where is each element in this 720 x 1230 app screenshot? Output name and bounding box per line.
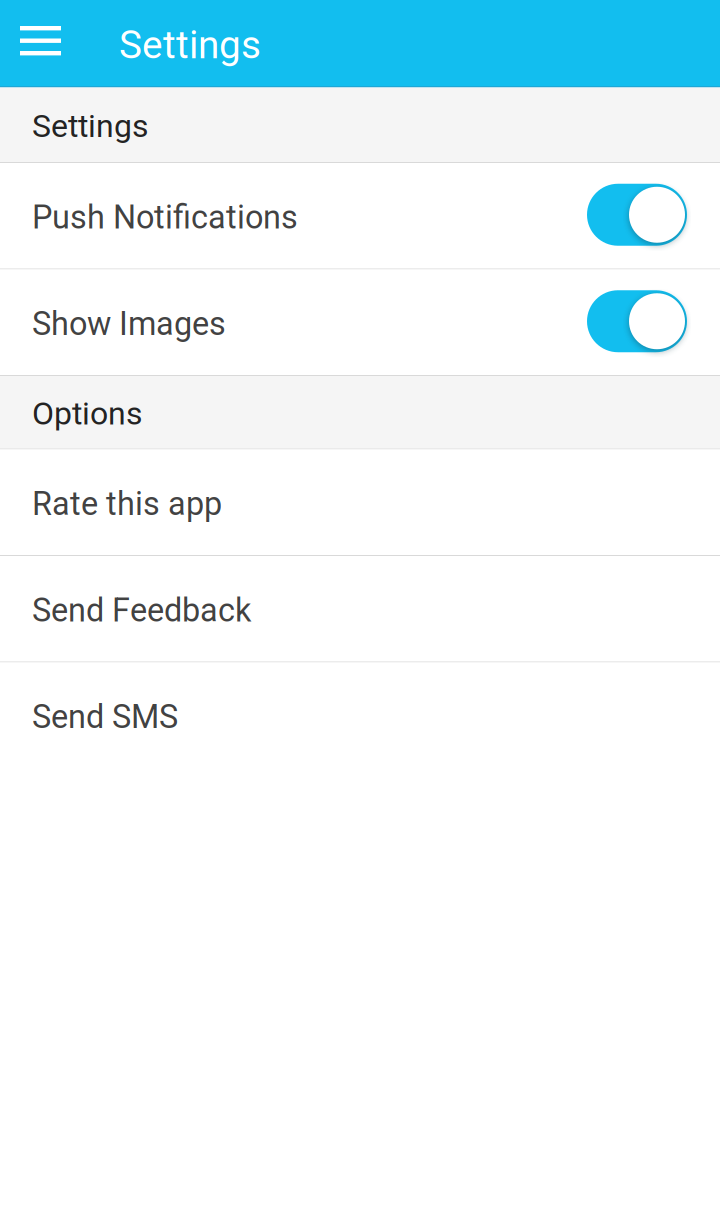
staticText: Send Feedback bbox=[32, 592, 251, 630]
staticText: Send SMS bbox=[32, 698, 178, 736]
staticText: Settings bbox=[119, 22, 261, 68]
staticText: Settings bbox=[32, 107, 149, 145]
staticText: Push Notifications bbox=[32, 199, 298, 237]
button[interactable]: Show Images bbox=[0, 269, 720, 376]
button[interactable]: Push Notifications, on bbox=[587, 185, 687, 247]
staticText: Rate this app bbox=[32, 485, 222, 523]
button[interactable]: Show Images, on bbox=[587, 291, 687, 353]
button[interactable]: Send SMS bbox=[0, 662, 720, 768]
staticText: Show Images bbox=[32, 305, 226, 343]
button[interactable]: Push Notifications bbox=[0, 163, 720, 269]
button[interactable]: Open navigation menu bbox=[0, 0, 119, 86]
staticText: Options bbox=[32, 395, 143, 432]
button[interactable]: Rate this app bbox=[0, 449, 720, 556]
button[interactable]: Send Feedback bbox=[0, 556, 720, 662]
